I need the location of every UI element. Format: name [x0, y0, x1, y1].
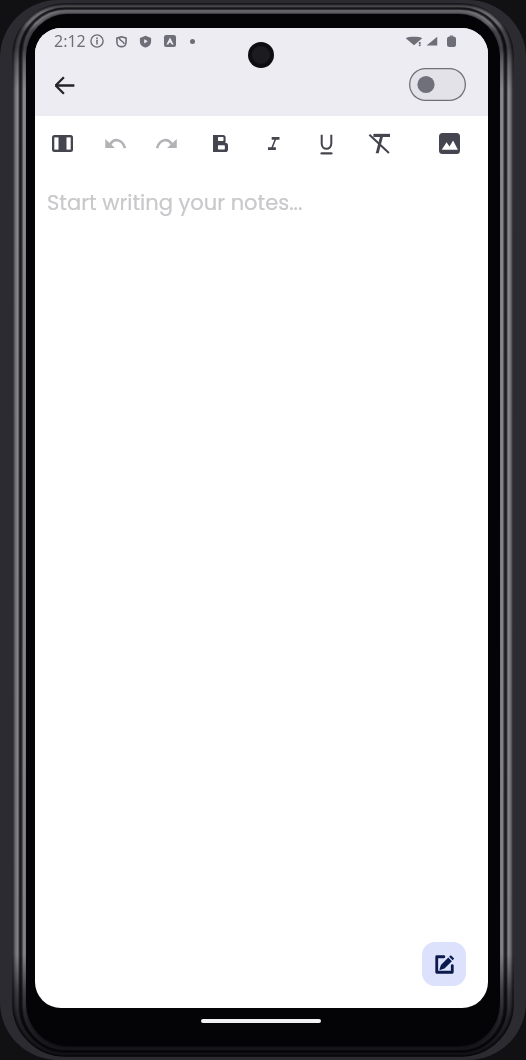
button[interactable]: Redo — [150, 126, 184, 160]
button[interactable]: Insert image — [432, 126, 466, 160]
button[interactable]: Italic — [256, 126, 290, 160]
button[interactable]: Undo — [97, 126, 131, 160]
button[interactable]: Back — [44, 65, 84, 105]
staticText: 2:12 — [54, 30, 86, 52]
button[interactable]: New note — [422, 942, 466, 986]
button[interactable]: Clear formatting — [362, 126, 396, 160]
staticText: Start writing your notes... — [47, 188, 303, 217]
button[interactable]: Underline — [309, 126, 343, 160]
button[interactable]: Columns — [45, 126, 79, 160]
button[interactable]: Bold — [203, 126, 237, 160]
button[interactable]: Toggle mode — [409, 68, 466, 101]
